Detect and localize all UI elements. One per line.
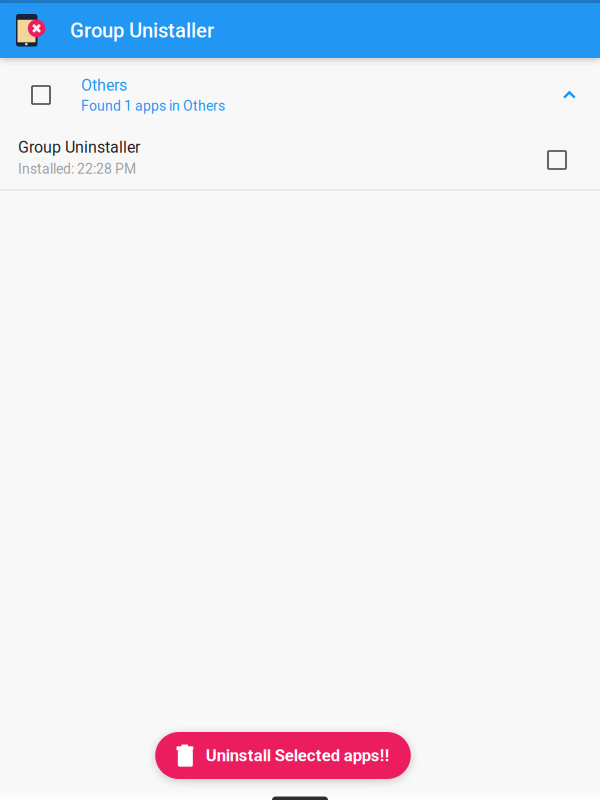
staticText: Uninstall Selected apps!! [206,746,390,765]
button[interactable]: Group Uninstaller [0,132,600,188]
button[interactable]: Others [0,58,600,132]
staticText: Found 1 apps in Others [81,98,225,114]
staticText: Installed: 22:28 PM [18,161,136,177]
button[interactable]: Uninstall Selected apps!! [155,732,411,779]
staticText: Group Unistaller [70,19,214,42]
staticText: Group Uninstaller [18,138,140,157]
staticText: Others [81,76,127,95]
